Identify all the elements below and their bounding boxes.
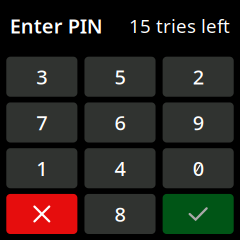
staticText: 3 <box>36 63 47 90</box>
staticText: 7 <box>36 109 47 136</box>
button[interactable]: 2 <box>163 57 234 97</box>
button[interactable]: 9 <box>163 102 234 142</box>
staticText: 15 tries left <box>129 13 230 38</box>
staticText: 4 <box>114 155 125 181</box>
button[interactable]: Confirm <box>163 194 234 234</box>
button[interactable]: 4 <box>84 148 156 188</box>
button[interactable]: 1 <box>6 148 77 188</box>
staticText: 0 <box>193 155 204 181</box>
button[interactable]: 5 <box>84 57 156 97</box>
button[interactable]: 8 <box>84 194 156 234</box>
button[interactable]: 3 <box>6 57 77 97</box>
staticText: 9 <box>193 109 204 136</box>
staticText: 6 <box>114 109 125 136</box>
button[interactable]: Cancel <box>6 194 77 234</box>
staticText: 5 <box>114 63 125 90</box>
button[interactable]: 6 <box>84 102 156 142</box>
staticText: 8 <box>114 201 125 227</box>
staticText: 2 <box>193 63 204 90</box>
button[interactable]: 0 <box>163 148 234 188</box>
staticText: Enter PIN <box>10 12 103 39</box>
button[interactable]: 7 <box>6 102 77 142</box>
staticText: 1 <box>36 155 47 181</box>
